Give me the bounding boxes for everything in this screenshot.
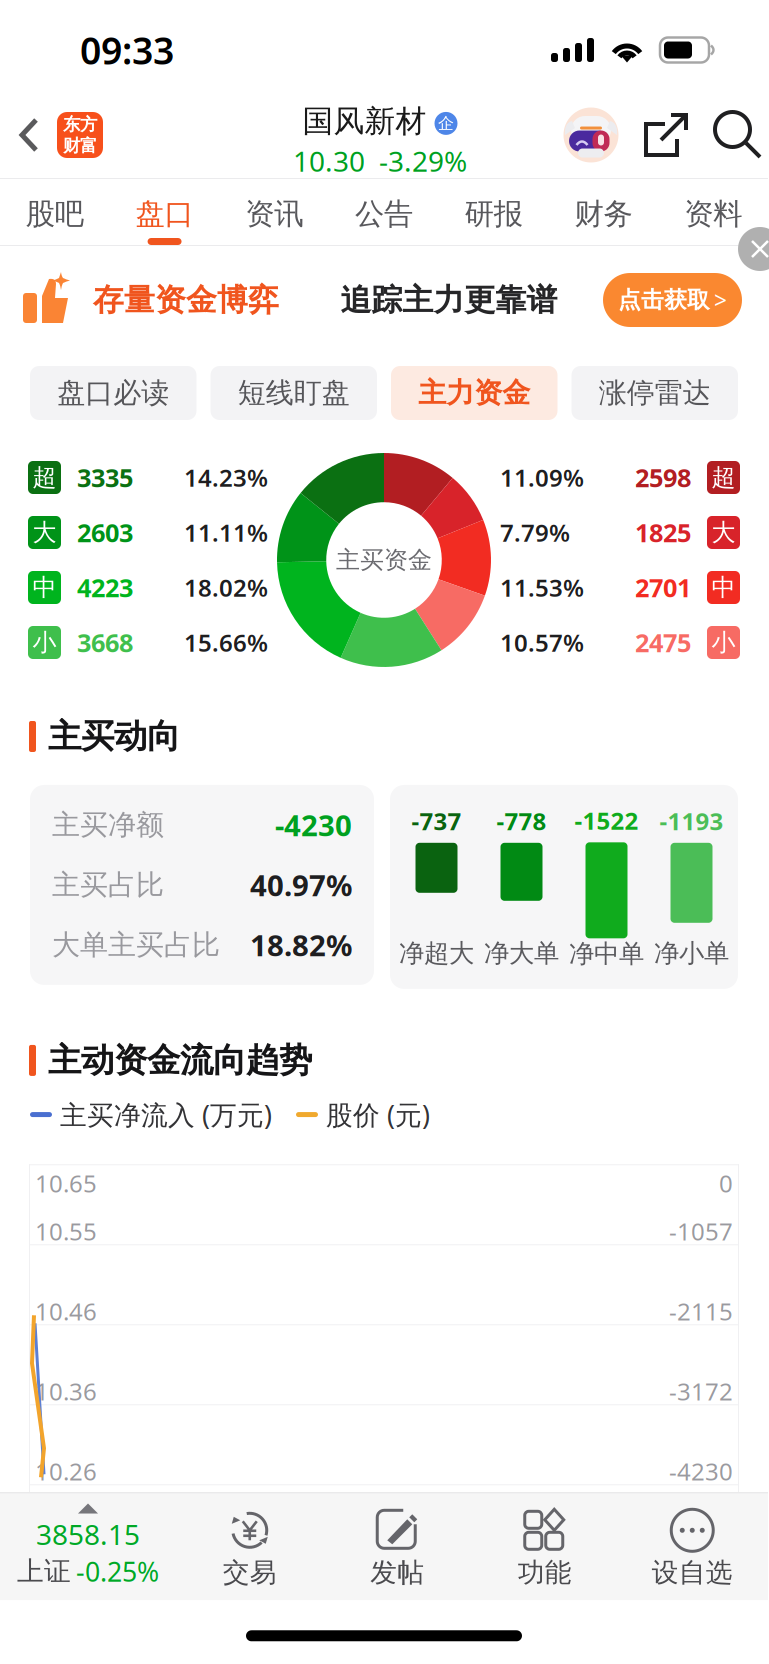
staticText: 09:33 bbox=[80, 25, 174, 75]
button[interactable]: 资料 bbox=[658, 179, 768, 245]
staticText: > bbox=[714, 285, 727, 315]
button[interactable]: 财务 bbox=[549, 179, 658, 245]
staticText: 股吧 bbox=[26, 196, 84, 232]
staticText: 1825 bbox=[635, 516, 691, 549]
staticText: 主买动向 bbox=[48, 716, 180, 757]
button[interactable]: 涨停雷达 bbox=[571, 366, 738, 420]
staticText: 11.11% bbox=[184, 517, 268, 548]
staticText: 10.30 -3.29% bbox=[293, 142, 467, 179]
staticText: 中 bbox=[711, 573, 735, 602]
staticText: 主买净流入 (万元) bbox=[60, 1097, 272, 1132]
button[interactable]: Back bbox=[4, 100, 57, 170]
staticText: 盘口必读 bbox=[57, 376, 169, 410]
button[interactable]: 研报 bbox=[439, 179, 549, 245]
staticText: 2701 bbox=[635, 571, 691, 604]
button[interactable]: 盘口 bbox=[110, 179, 219, 245]
staticText: 11.53% bbox=[500, 572, 584, 603]
staticText: 存量资金博弈 bbox=[93, 281, 279, 319]
staticText: 主买占比 bbox=[52, 868, 164, 902]
staticText: 净超大 bbox=[399, 938, 474, 969]
button[interactable]: 功能 bbox=[471, 1492, 618, 1600]
staticText: 40.97% bbox=[250, 865, 352, 904]
staticText: 净大单 bbox=[484, 938, 559, 969]
staticText: 功能 bbox=[518, 1556, 572, 1589]
staticText: -4230 bbox=[669, 1455, 733, 1487]
staticText: 公告 bbox=[355, 196, 413, 232]
staticText: 4223 bbox=[77, 571, 133, 604]
staticText: 企 bbox=[438, 114, 454, 133]
staticText: 发帖 bbox=[370, 1556, 424, 1589]
button[interactable]: East Money home bbox=[57, 112, 103, 158]
staticText: 14.23% bbox=[184, 462, 268, 493]
staticText: 涨停雷达 bbox=[599, 376, 711, 410]
staticText: 主力资金 bbox=[418, 376, 530, 410]
button[interactable]: 发帖 bbox=[323, 1492, 471, 1600]
staticText: -2115 bbox=[669, 1295, 733, 1327]
button[interactable]: Search bbox=[715, 112, 761, 158]
staticText: 点击获取 bbox=[618, 286, 710, 314]
staticText: 10.36 bbox=[35, 1375, 97, 1407]
staticText: 18.02% bbox=[184, 572, 268, 603]
staticText: 0 bbox=[719, 1167, 733, 1199]
staticText: 上证 bbox=[17, 1555, 71, 1588]
staticText: 18.82% bbox=[250, 925, 352, 964]
staticText: 10.65 bbox=[35, 1167, 97, 1199]
button[interactable]: 公告 bbox=[329, 179, 439, 245]
staticText: 10.26 bbox=[35, 1455, 97, 1487]
staticText: 交易 bbox=[223, 1556, 277, 1589]
staticText: 主买资金 bbox=[336, 545, 432, 575]
button[interactable]: 短线盯盘 bbox=[210, 366, 377, 420]
staticText: 2603 bbox=[77, 516, 133, 549]
staticText: 财富 bbox=[63, 135, 97, 156]
staticText: 3858.15 bbox=[36, 1515, 140, 1553]
staticText: 净中单 bbox=[569, 938, 644, 969]
button[interactable]: 主力资金 bbox=[391, 366, 557, 420]
staticText: 大 bbox=[711, 518, 735, 547]
staticText: 2475 bbox=[635, 626, 691, 659]
staticText: 大 bbox=[32, 518, 56, 547]
staticText: 盘口 bbox=[136, 196, 194, 232]
button[interactable]: 资讯 bbox=[219, 179, 329, 245]
staticText: 小 bbox=[32, 628, 56, 657]
staticText: -1057 bbox=[669, 1215, 733, 1247]
button[interactable]: AI assistant bbox=[555, 107, 643, 163]
button[interactable]: 设自选 bbox=[618, 1492, 766, 1600]
staticText: 设自选 bbox=[652, 1556, 733, 1589]
button[interactable]: 股吧 bbox=[0, 179, 110, 245]
staticText: 资料 bbox=[684, 196, 742, 232]
staticText: 国风新材 bbox=[302, 103, 426, 140]
button[interactable]: Share bbox=[643, 112, 715, 158]
staticText: -1193 bbox=[659, 805, 723, 837]
staticText: 超 bbox=[711, 463, 735, 492]
staticText: 2598 bbox=[635, 461, 691, 494]
staticText: 股价 (元) bbox=[326, 1097, 430, 1132]
staticText: 追踪主力更靠谱 bbox=[340, 281, 557, 319]
staticText: 资讯 bbox=[245, 196, 303, 232]
staticText: -4230 bbox=[275, 805, 352, 844]
staticText: 15.66% bbox=[184, 627, 268, 658]
button[interactable]: 盘口必读 bbox=[30, 366, 196, 420]
staticText: 超 bbox=[32, 463, 56, 492]
staticText: 11.09% bbox=[500, 462, 584, 493]
button[interactable]: 交易 bbox=[176, 1492, 323, 1600]
staticText: -0.25% bbox=[76, 1554, 159, 1589]
staticText: 研报 bbox=[465, 196, 523, 232]
staticText: -737 bbox=[411, 805, 461, 837]
staticText: 短线盯盘 bbox=[238, 376, 350, 410]
button[interactable]: 3858.15 bbox=[0, 1492, 176, 1600]
staticText: 东方 bbox=[63, 114, 97, 135]
button[interactable]: Close bbox=[738, 227, 769, 271]
staticText: -3172 bbox=[669, 1375, 733, 1407]
staticText: 主动资金流向趋势 bbox=[48, 1040, 312, 1081]
staticText: 10.46 bbox=[35, 1295, 97, 1327]
staticText: -778 bbox=[496, 805, 546, 837]
staticText: 财务 bbox=[574, 196, 632, 232]
staticText: 3335 bbox=[77, 461, 133, 494]
staticText: 小 bbox=[711, 628, 735, 657]
staticText: 大单主买占比 bbox=[52, 928, 220, 962]
button[interactable]: 点击获取 bbox=[603, 273, 742, 327]
staticText: 3668 bbox=[77, 626, 133, 659]
staticText: 10.55 bbox=[35, 1215, 97, 1247]
staticText: 中 bbox=[32, 573, 56, 602]
staticText: 主买净额 bbox=[52, 808, 164, 842]
